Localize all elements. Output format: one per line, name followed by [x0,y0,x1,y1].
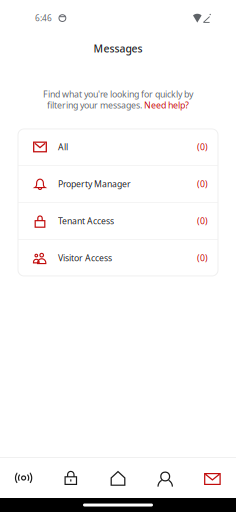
staticText: Need help? [144,99,189,111]
button[interactable]: Visitor Access [18,240,218,276]
button[interactable]: Profile [142,458,189,498]
button[interactable]: All [18,129,218,165]
staticText: 6:46 [35,12,52,24]
staticText: filtering your messages. [47,99,144,111]
staticText: Messages [93,41,142,56]
staticText: (0) [197,178,208,190]
staticText: Property Manager [58,178,131,190]
staticText: Find what you're looking for quickly by [43,88,193,100]
button[interactable]: Home [94,458,142,498]
staticText: (0) [197,141,208,153]
staticText: (0) [197,252,208,264]
button[interactable]: Need help? [144,99,189,111]
staticText: Tenant Access [58,215,114,227]
button[interactable]: Property Manager [18,166,218,202]
button[interactable]: Access [47,458,94,498]
button[interactable]: Broadcast [0,458,47,498]
staticText: Visitor Access [58,252,112,264]
staticText: All [58,141,68,153]
button[interactable]: Messages [189,458,236,498]
button[interactable]: Tenant Access [18,203,218,239]
staticText: (0) [197,215,208,227]
